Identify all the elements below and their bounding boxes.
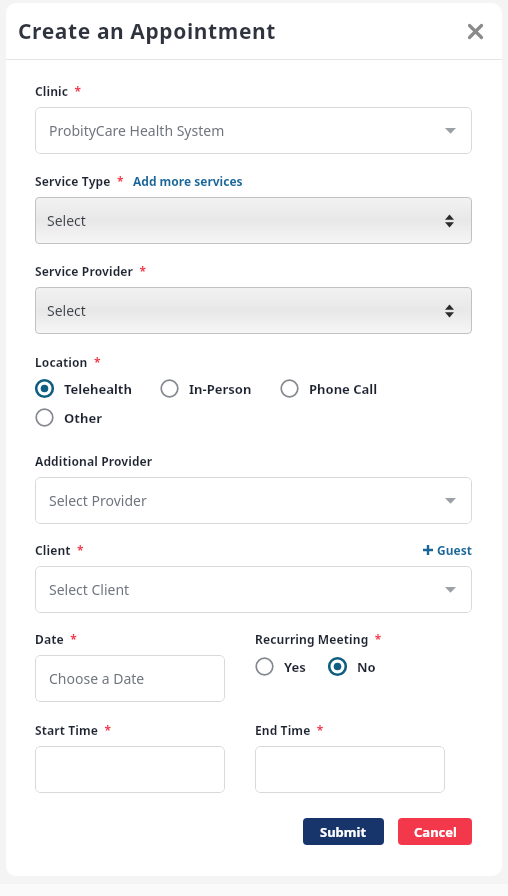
staticText: Guest [437, 542, 472, 558]
staticText: Submit [320, 823, 367, 841]
staticText: No [357, 658, 376, 676]
staticText: Other [64, 409, 102, 427]
staticText: Telehealth [64, 380, 132, 398]
staticText: In-Person [189, 380, 252, 398]
staticText: ProbityCare Health System [49, 121, 225, 140]
staticText: Date * [35, 631, 77, 647]
staticText: Select Client [49, 580, 130, 599]
button[interactable] [255, 746, 445, 793]
staticText: Create an Appointment [18, 17, 276, 46]
button[interactable]: Telehealth [35, 379, 132, 398]
staticText: Service Provider * [35, 263, 147, 279]
staticText: Select [47, 211, 86, 230]
button[interactable]: Select Provider [35, 477, 472, 524]
staticText: Add more services [133, 173, 243, 189]
staticText: Start Time * [35, 722, 112, 738]
button[interactable]: Yes [255, 657, 306, 676]
staticText: Phone Call [309, 380, 378, 398]
button[interactable]: Close [460, 16, 490, 46]
button[interactable]: Cancel [398, 818, 472, 845]
staticText: Location * [35, 354, 101, 370]
button[interactable]: Phone Call [280, 379, 378, 398]
staticText: Select Provider [49, 491, 147, 510]
button[interactable]: Select [35, 287, 472, 334]
button[interactable]: Add more services [133, 173, 243, 189]
staticText: Cancel [414, 823, 457, 841]
button[interactable]: Submit [303, 818, 384, 845]
button[interactable]: Select Client [35, 566, 472, 613]
staticText: Yes [284, 658, 306, 676]
staticText: Service Type * [35, 173, 124, 189]
button[interactable]: ProbityCare Health System [35, 107, 472, 154]
staticText: Additional Provider [35, 453, 153, 469]
staticText: Client * [35, 542, 84, 558]
staticText: Select [47, 301, 86, 320]
button[interactable]: Choose a Date [35, 655, 225, 702]
button[interactable] [35, 746, 225, 793]
button[interactable]: Select [35, 197, 472, 244]
button[interactable]: In-Person [160, 379, 252, 398]
button[interactable]: No [328, 657, 376, 676]
button[interactable]: Other [35, 408, 102, 427]
staticText: Recurring Meeting * [255, 631, 382, 647]
button[interactable]: Guest [423, 542, 472, 558]
staticText: Choose a Date [49, 669, 145, 688]
staticText: Clinic * [35, 83, 82, 99]
staticText: End Time * [255, 722, 324, 738]
